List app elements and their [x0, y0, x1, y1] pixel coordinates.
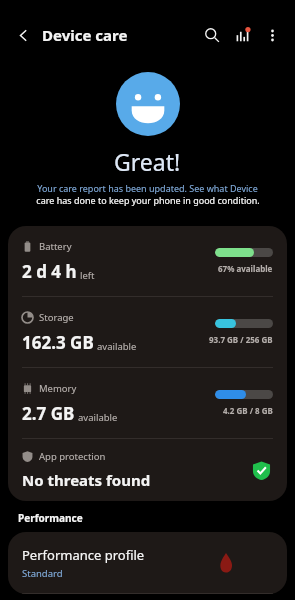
- staticText: Great!: [114, 146, 181, 177]
- button[interactable]: Usage statistics: [227, 20, 257, 50]
- staticText: left: [80, 269, 95, 282]
- staticText: Battery: [39, 240, 72, 253]
- button[interactable]: Performance profile: [8, 532, 287, 594]
- staticText: Standard: [22, 567, 63, 580]
- button[interactable]: Battery: [8, 226, 287, 296]
- button[interactable]: Search: [197, 20, 227, 50]
- staticText: No threats found: [22, 470, 151, 490]
- staticText: 67% available: [218, 263, 273, 274]
- staticText: Storage: [39, 311, 74, 324]
- staticText: 162.3 GB: [22, 331, 94, 354]
- button[interactable]: More options: [257, 20, 287, 50]
- staticText: App protection: [39, 450, 106, 463]
- button[interactable]: App protection: [8, 439, 287, 501]
- staticText: 2 d 4 h: [22, 260, 77, 283]
- staticText: 2.7 GB: [22, 402, 75, 425]
- button[interactable]: Storage: [8, 297, 287, 367]
- staticText: 93.7 GB / 256 GB: [209, 334, 273, 345]
- staticText: Performance profile: [22, 546, 145, 564]
- button[interactable]: Memory: [8, 368, 287, 438]
- staticText: 4.2 GB / 8 GB: [223, 405, 273, 416]
- button[interactable]: Back: [8, 20, 38, 50]
- staticText: available: [97, 340, 137, 353]
- staticText: Memory: [39, 382, 77, 395]
- staticText: Performance: [18, 511, 83, 525]
- staticText: Device care: [42, 25, 128, 45]
- staticText: available: [78, 411, 118, 424]
- staticText: Your care report has been updated. See w…: [37, 182, 258, 194]
- staticText: care has done to keep your phone in good…: [36, 194, 260, 206]
